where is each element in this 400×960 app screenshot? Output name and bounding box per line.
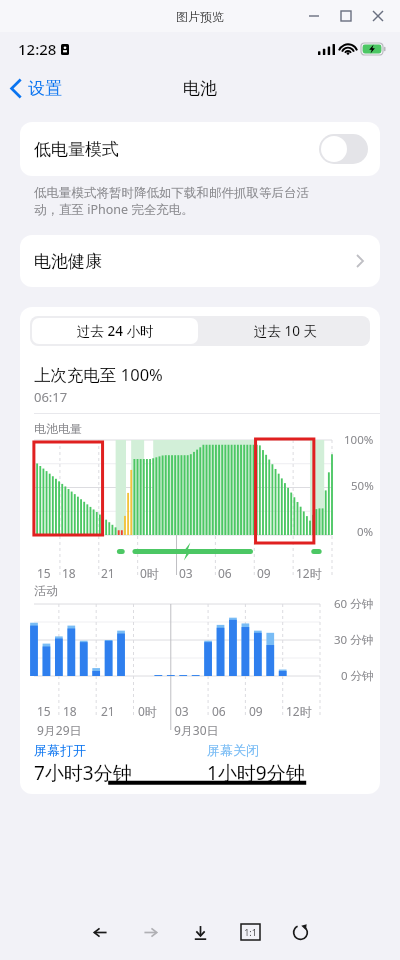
staticText: 电池 — [183, 78, 217, 99]
button[interactable]: 低电量模式开关 — [319, 134, 368, 164]
staticText: 过去 10 天 — [254, 322, 317, 340]
button[interactable]: 过去 24 小时 — [32, 318, 198, 344]
button[interactable]: Rotate — [285, 917, 315, 947]
staticText: 0% — [357, 524, 374, 540]
staticText: 9月30日 — [174, 722, 219, 738]
staticText: 低电量模式 — [34, 139, 119, 160]
button[interactable]: 电池健康 — [20, 235, 380, 287]
staticText: 12:28 — [18, 39, 57, 59]
button[interactable]: Previous — [85, 917, 115, 947]
staticText: 屏幕关闭 — [207, 742, 259, 758]
staticText: 18 — [63, 703, 77, 719]
staticText: 06 — [218, 565, 232, 581]
staticText: 1小时9分钟 — [207, 760, 305, 786]
staticText: 06 — [212, 703, 226, 719]
staticText: 15 — [37, 703, 51, 719]
staticText: 09 — [249, 703, 263, 719]
staticText: 09 — [257, 565, 271, 581]
staticText: 12时 — [286, 703, 312, 719]
button[interactable]: Minimize — [298, 2, 330, 30]
button[interactable]: 低电量模式 — [20, 122, 380, 176]
staticText: 屏幕打开 — [34, 742, 86, 758]
button[interactable]: Download — [185, 917, 215, 947]
button[interactable]: 设置 — [10, 78, 62, 99]
button[interactable]: Actual size — [235, 917, 265, 947]
staticText: 60 分钟 — [334, 596, 374, 612]
staticText: 03 — [175, 703, 189, 719]
button[interactable]: Close — [362, 2, 394, 30]
staticText: 0时 — [138, 703, 157, 719]
staticText: 低电量模式将暂时降低如下载和邮件抓取等后台活 动，直至 iPhone 完全充电。 — [34, 185, 309, 218]
staticText: 50% — [351, 478, 374, 494]
staticText: 18 — [62, 565, 76, 581]
button[interactable]: Next — [135, 917, 165, 947]
button[interactable]: 过去 10 天 — [200, 316, 370, 346]
staticText: 电池健康 — [34, 251, 102, 272]
staticText: 图片预览 — [176, 9, 224, 24]
staticText: 03 — [179, 565, 193, 581]
staticText: 7小时3分钟 — [34, 760, 132, 786]
staticText: 0 分钟 — [341, 668, 374, 684]
button[interactable]: Maximize — [330, 2, 362, 30]
staticText: 21 — [101, 703, 115, 719]
staticText: 过去 24 小时 — [77, 322, 154, 340]
staticText: 0时 — [140, 565, 159, 581]
staticText: 上次充电至 100% — [34, 363, 163, 386]
staticText: 15 — [37, 565, 51, 581]
staticText: 30 分钟 — [334, 632, 374, 648]
staticText: 1:1 — [244, 926, 257, 938]
staticText: 活动 — [34, 583, 58, 598]
staticText: 9月29日 — [37, 722, 82, 738]
staticText: 电池电量 — [34, 421, 82, 436]
staticText: 21 — [101, 565, 115, 581]
staticText: 06:17 — [34, 388, 68, 406]
staticText: 设置 — [28, 78, 62, 99]
staticText: 12时 — [296, 565, 322, 581]
staticText: 100% — [344, 432, 374, 448]
